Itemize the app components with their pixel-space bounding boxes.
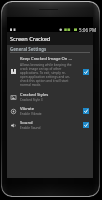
staticText: 5:06 PM — [79, 27, 97, 33]
staticText: Keep Cracked Image On T... — [20, 56, 72, 62]
button[interactable]: Screen Cracked — [7, 32, 93, 45]
staticText: Vibrate — [20, 106, 35, 112]
staticText: Cracked Styles — [20, 92, 49, 98]
staticText: Enable Sound — [20, 126, 41, 130]
staticText: Cracked Style 3 — [20, 98, 43, 102]
button[interactable]: Vibrate — [7, 104, 93, 118]
staticText: Allows browsing while keeping the crack … — [20, 63, 72, 87]
button[interactable]: Cracked Styles — [7, 90, 93, 104]
button[interactable]: Sound — [7, 118, 93, 132]
button[interactable]: Keep Cracked Image On T... — [7, 53, 93, 90]
staticText: Sound — [20, 120, 33, 126]
staticText: General Settings — [10, 46, 47, 52]
staticText: Screen Cracked — [10, 35, 51, 43]
button[interactable]: Toggle setting — [83, 69, 89, 75]
staticText: Enable Vibrate — [20, 112, 42, 116]
button[interactable]: Toggle setting — [83, 108, 89, 114]
button[interactable]: Toggle setting — [83, 122, 89, 128]
